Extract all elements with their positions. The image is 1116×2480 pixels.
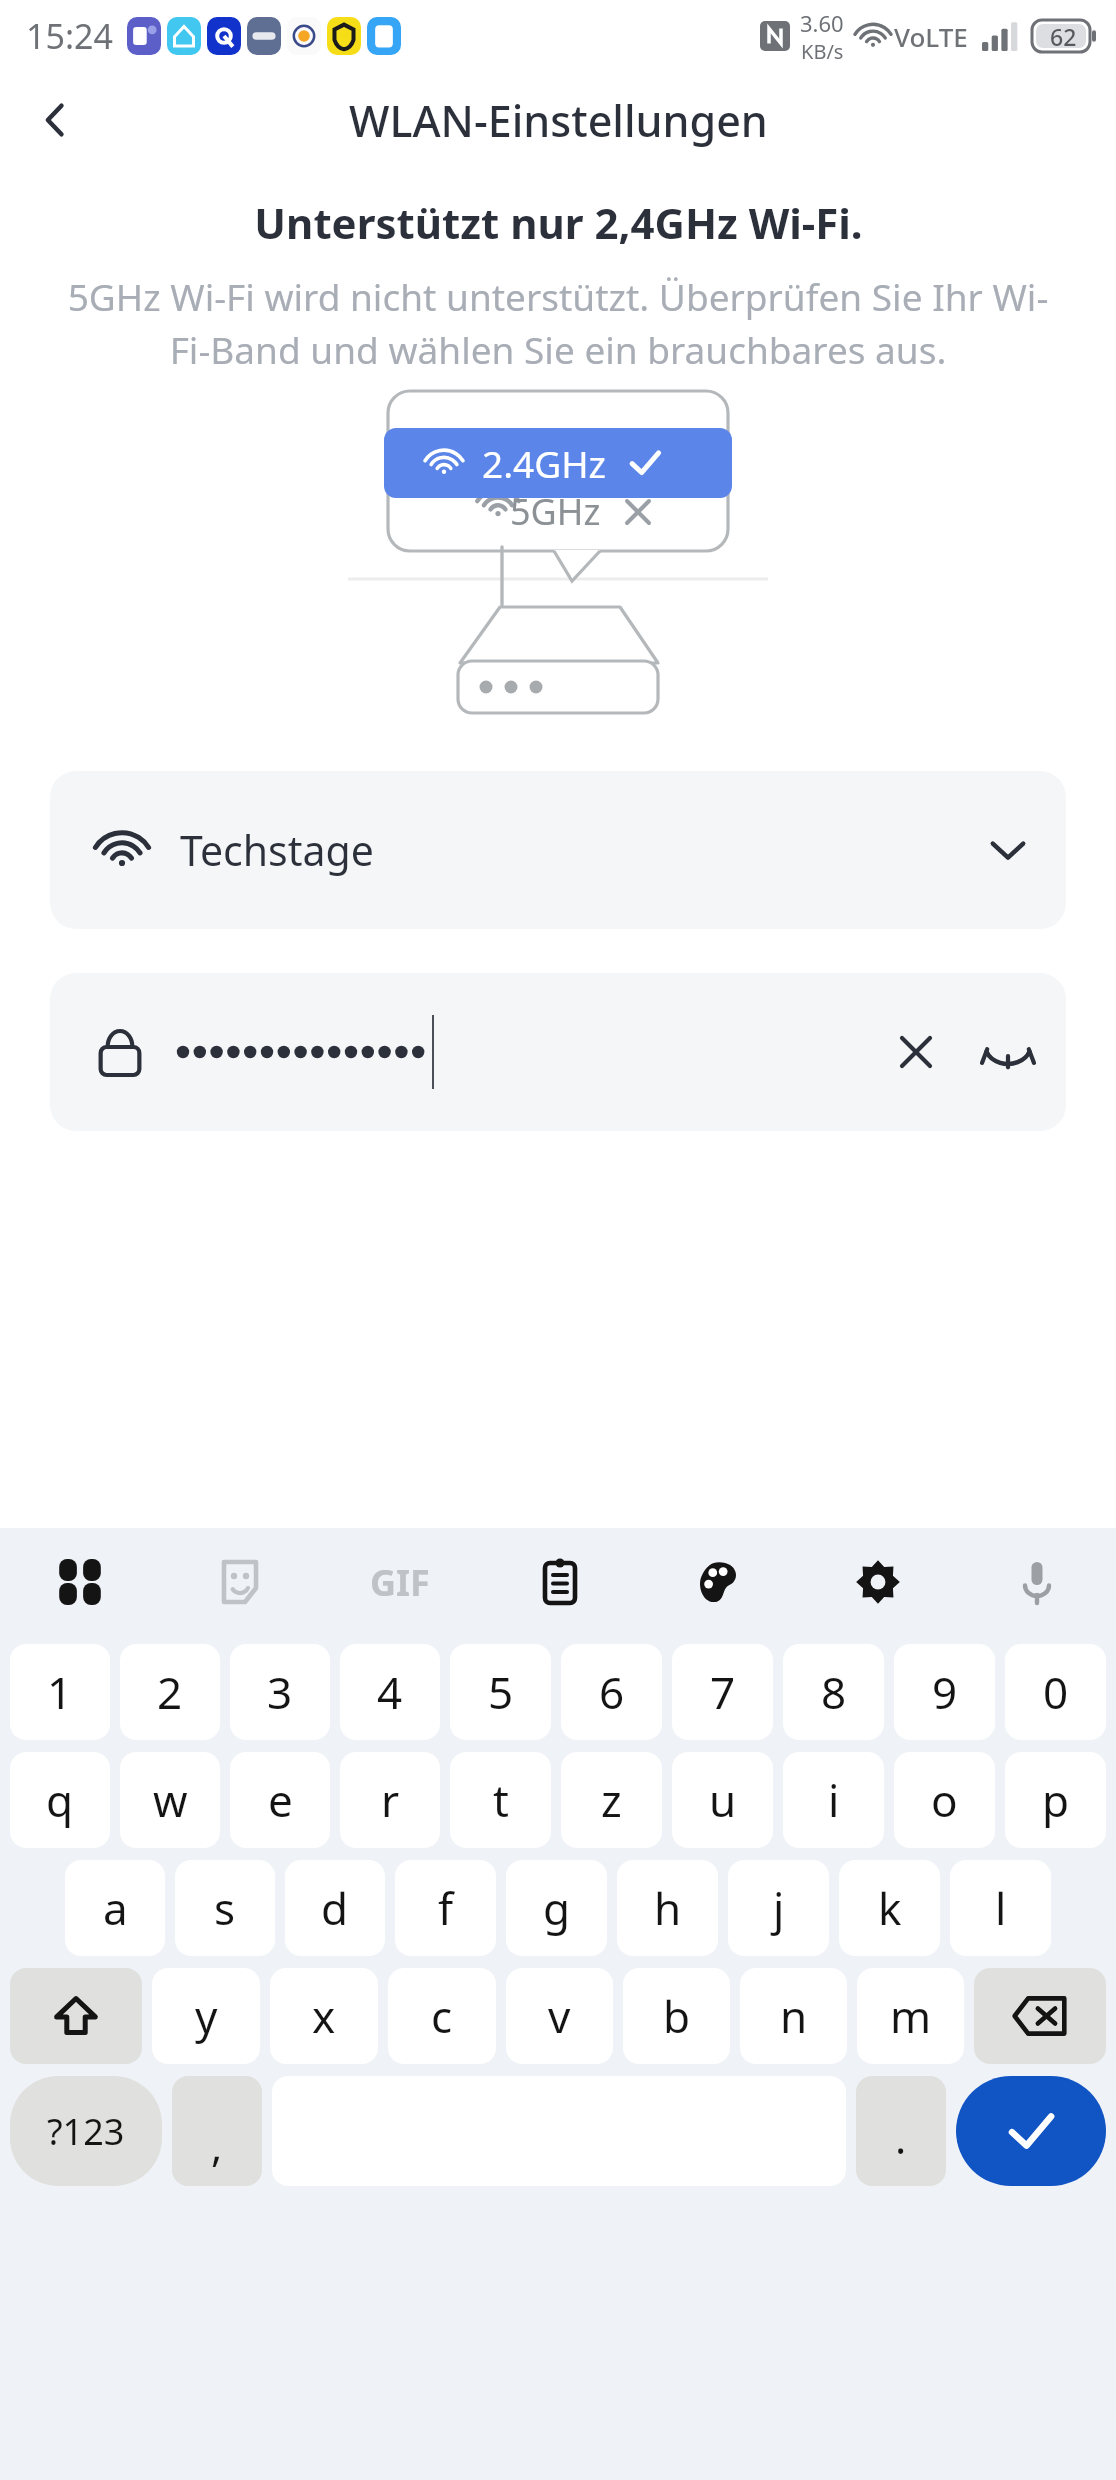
staticText: f xyxy=(438,1878,454,1938)
button[interactable]: h xyxy=(617,1860,718,1956)
button[interactable]: v xyxy=(506,1968,613,2064)
button[interactable]: d xyxy=(285,1860,385,1956)
staticText: GIF xyxy=(370,1558,430,1607)
button[interactable]: y xyxy=(152,1968,260,2064)
button[interactable]: 4 xyxy=(340,1644,440,1740)
staticText: r xyxy=(381,1770,400,1830)
staticText: b xyxy=(663,1986,691,2046)
staticText: 0 xyxy=(1043,1662,1069,1722)
button[interactable]: q xyxy=(10,1752,110,1848)
staticText: , xyxy=(211,2117,223,2174)
staticText: m xyxy=(890,1986,932,2046)
button[interactable]: e xyxy=(230,1752,330,1848)
button[interactable]: Clear password xyxy=(50,973,1066,1131)
staticText: a xyxy=(103,1878,128,1938)
button[interactable]: i xyxy=(783,1752,884,1848)
button[interactable]: 8 xyxy=(783,1644,884,1740)
staticText: g xyxy=(543,1878,571,1938)
button[interactable]: Themes xyxy=(639,1528,798,1636)
staticText: t xyxy=(493,1770,509,1830)
button[interactable]: 2 xyxy=(120,1644,220,1740)
staticText: k xyxy=(878,1878,902,1938)
button[interactable]: 1 xyxy=(10,1644,110,1740)
staticText: 3 xyxy=(267,1662,293,1722)
staticText: j xyxy=(773,1878,785,1938)
button[interactable]: Expand network list xyxy=(972,814,1044,886)
button[interactable]: k xyxy=(839,1860,940,1956)
button[interactable]: ?123 xyxy=(10,2076,162,2186)
button[interactable]: b xyxy=(623,1968,730,2064)
staticText: s xyxy=(214,1878,236,1938)
button[interactable]: Shift xyxy=(10,1968,142,2064)
staticText: 5 xyxy=(488,1662,514,1722)
button[interactable]: Stickers xyxy=(160,1528,320,1636)
staticText: h xyxy=(654,1878,682,1938)
button[interactable]: m xyxy=(857,1968,964,2064)
staticText: 1 xyxy=(47,1662,73,1722)
button[interactable]: n xyxy=(740,1968,847,2064)
button[interactable]: t xyxy=(450,1752,551,1848)
staticText: 6 xyxy=(599,1662,625,1722)
staticText: . xyxy=(895,2109,907,2166)
button[interactable]: r xyxy=(340,1752,440,1848)
button[interactable]: Clear password xyxy=(880,1016,952,1088)
staticText: c xyxy=(431,1986,453,2046)
button[interactable]: Keyboard layouts xyxy=(0,1528,160,1636)
staticText: 2.4GHz xyxy=(482,438,606,488)
button[interactable]: j xyxy=(728,1860,829,1956)
button[interactable]: 2.4GHz xyxy=(384,428,732,498)
button[interactable]: Backspace xyxy=(974,1968,1106,2064)
button[interactable]: Enter xyxy=(956,2076,1106,2186)
staticText: n xyxy=(780,1986,808,2046)
staticText: Techstage xyxy=(180,822,374,878)
button[interactable]: l xyxy=(950,1860,1051,1956)
button[interactable]: 9 xyxy=(894,1644,995,1740)
button[interactable]: f xyxy=(395,1860,496,1956)
staticText: 15:24 xyxy=(26,13,113,59)
staticText: y xyxy=(195,1986,218,2046)
button[interactable]: w xyxy=(120,1752,220,1848)
staticText: o xyxy=(931,1770,958,1830)
button[interactable]: GIF xyxy=(320,1528,480,1636)
staticText: 9 xyxy=(932,1662,958,1722)
button[interactable]: 7 xyxy=(672,1644,773,1740)
button[interactable]: c xyxy=(388,1968,496,2064)
staticText: VoLTE xyxy=(894,19,968,54)
button[interactable]: p xyxy=(1005,1752,1106,1848)
button[interactable]: 0 xyxy=(1005,1644,1106,1740)
button[interactable]: . xyxy=(856,2076,946,2186)
staticText: 5GHz Wi-Fi wird nicht unterstützt. Überp… xyxy=(52,271,1064,375)
button[interactable]: Techstage xyxy=(50,771,1066,929)
button[interactable]: , xyxy=(172,2076,262,2186)
staticText: x xyxy=(312,1986,336,2046)
button[interactable]: a xyxy=(65,1860,165,1956)
button[interactable]: z xyxy=(561,1752,662,1848)
staticText: w xyxy=(153,1770,188,1830)
button[interactable]: 6 xyxy=(561,1644,662,1740)
button[interactable]: Voice input xyxy=(957,1528,1116,1636)
staticText: Unterstützt nur 2,4GHz Wi-Fi. xyxy=(254,194,863,251)
button[interactable]: g xyxy=(506,1860,607,1956)
button[interactable]: u xyxy=(672,1752,773,1848)
staticText: 62 xyxy=(1050,21,1077,52)
button[interactable]: 5 xyxy=(450,1644,551,1740)
button[interactable]: Settings xyxy=(798,1528,957,1636)
staticText: ?123 xyxy=(47,2107,125,2156)
staticText: u xyxy=(709,1770,737,1830)
button[interactable]: Clipboard xyxy=(480,1528,639,1636)
staticText: l xyxy=(995,1878,1007,1938)
button[interactable]: Back xyxy=(22,86,90,154)
staticText: i xyxy=(828,1770,840,1830)
staticText: v xyxy=(548,1986,571,2046)
button[interactable]: Show password xyxy=(970,1014,1046,1090)
button[interactable]: s xyxy=(175,1860,275,1956)
staticText: p xyxy=(1042,1770,1070,1830)
staticText: WLAN-Einstellungen xyxy=(349,91,768,150)
staticText: 2 xyxy=(157,1662,183,1722)
button[interactable]: o xyxy=(894,1752,995,1848)
staticText: e xyxy=(268,1770,293,1830)
staticText: 4 xyxy=(377,1662,403,1722)
button[interactable]: 3 xyxy=(230,1644,330,1740)
button[interactable]: x xyxy=(270,1968,378,2064)
